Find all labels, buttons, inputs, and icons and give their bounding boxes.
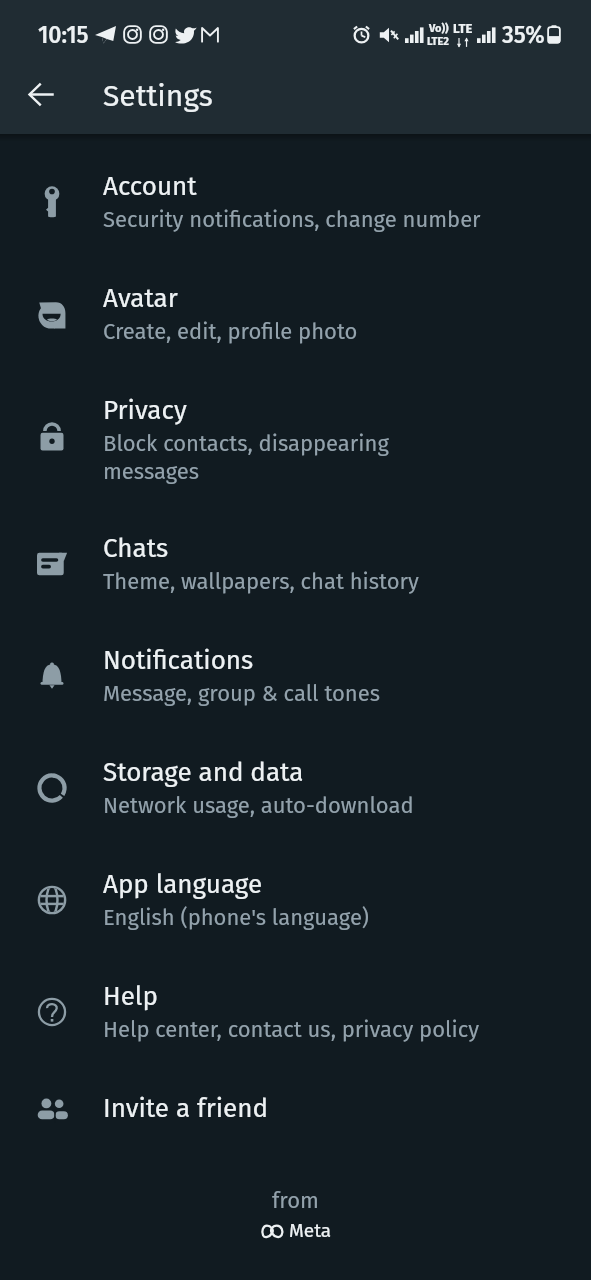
staticText: from [272, 1187, 319, 1213]
staticText: Help center, contact us, privacy policy [103, 1016, 480, 1042]
staticText: Account [103, 171, 197, 202]
staticText: Theme, wallpapers, chat history [103, 568, 419, 594]
button[interactable]: Invite a friend [0, 1081, 591, 1193]
staticText: LTE [453, 21, 473, 37]
staticText: Vo)) [429, 22, 449, 35]
staticText: Invite a friend [103, 1093, 268, 1124]
button[interactable]: Storage and data [0, 745, 591, 857]
staticText: Avatar [103, 283, 178, 314]
staticText: Network usage, auto-download [103, 792, 414, 818]
button[interactable]: Help [0, 969, 591, 1081]
staticText: App language [103, 869, 263, 900]
staticText: Privacy [103, 395, 187, 426]
staticText: Settings [103, 78, 213, 114]
button[interactable]: Notifications [0, 633, 591, 745]
button[interactable]: Avatar [0, 271, 591, 383]
staticText: Message, group & call tones [103, 680, 381, 706]
button[interactable]: Chats [0, 521, 591, 633]
staticText: LTE2 [427, 35, 450, 48]
staticText: 10:15 [38, 21, 89, 49]
staticText: Security notifications, change number [103, 206, 481, 232]
staticText: English (phone's language) [103, 904, 370, 930]
button[interactable]: App language [0, 857, 591, 969]
button[interactable]: Back [17, 70, 65, 118]
staticText: 35% [502, 21, 545, 49]
staticText: Block contacts, disappearing messages [103, 430, 389, 485]
button[interactable]: Privacy [0, 383, 591, 521]
staticText: Storage and data [103, 757, 304, 788]
staticText: Notifications [103, 645, 254, 676]
button[interactable]: Account [0, 159, 591, 271]
staticText: Chats [103, 533, 169, 564]
staticText: Meta [289, 1219, 332, 1242]
staticText: Create, edit, profile photo [103, 318, 358, 344]
staticText: Help [103, 981, 158, 1012]
